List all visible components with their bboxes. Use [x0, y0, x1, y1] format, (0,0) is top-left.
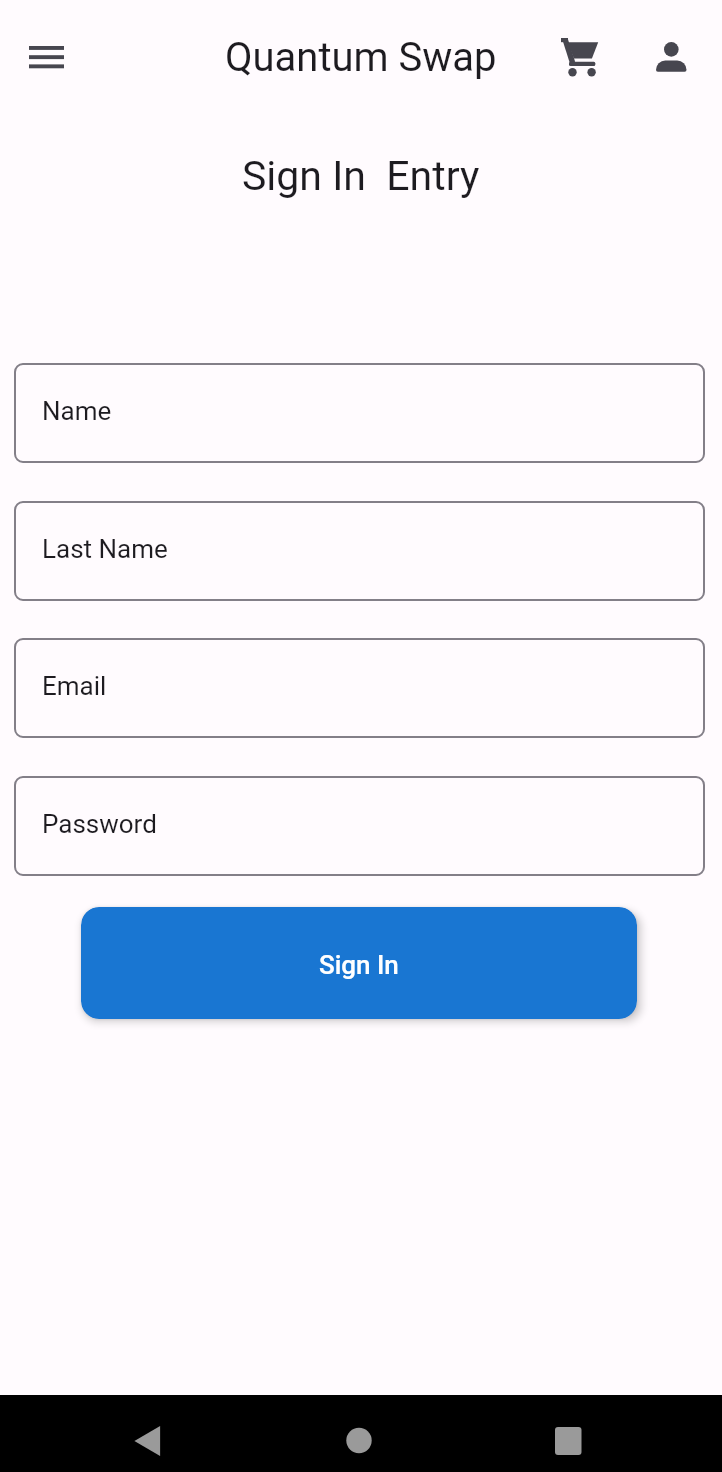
staticText: Sign In	[319, 950, 399, 980]
button[interactable]: Last Name	[14, 501, 705, 601]
button[interactable]: Name	[14, 363, 705, 463]
button[interactable]	[552, 28, 604, 80]
staticText: Password	[42, 809, 157, 839]
button[interactable]: Sign In	[81, 907, 637, 1019]
staticText: Name	[42, 396, 112, 426]
button[interactable]	[544, 1416, 592, 1464]
staticText: Quantum Swap	[225, 34, 497, 81]
button[interactable]	[647, 28, 695, 76]
staticText: Email	[42, 671, 107, 701]
staticText: Sign In Entry	[242, 152, 480, 200]
button[interactable]: Email	[14, 638, 705, 738]
button[interactable]	[22, 33, 70, 81]
button[interactable]	[335, 1416, 383, 1464]
staticText: Last Name	[42, 534, 168, 564]
button[interactable]: Password	[14, 776, 705, 876]
button[interactable]	[124, 1416, 172, 1464]
